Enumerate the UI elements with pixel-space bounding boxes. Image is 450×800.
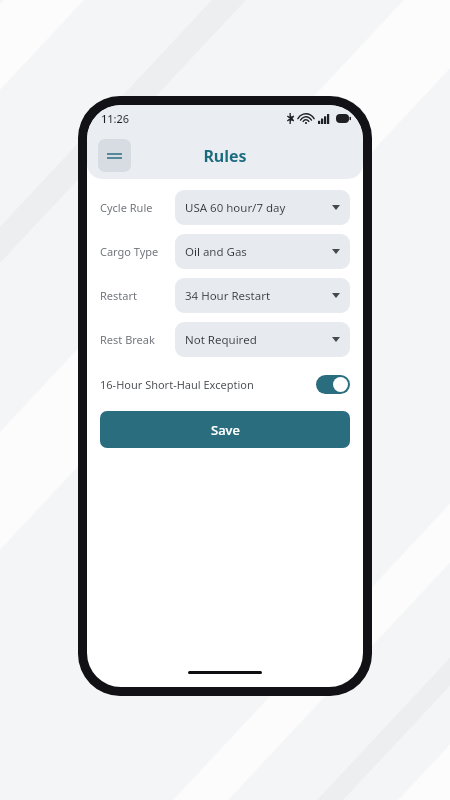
button[interactable]: 16-Hour Short-Haul Exception xyxy=(100,372,350,396)
button[interactable]: Open navigation menu xyxy=(98,139,131,172)
staticText: Oil and Gas xyxy=(185,244,247,260)
staticText: Restart xyxy=(100,288,170,303)
staticText: Not Required xyxy=(185,332,257,348)
button[interactable]: Save xyxy=(100,411,350,448)
button[interactable]: 34 Hour Restart xyxy=(175,278,350,313)
staticText: Cargo Type xyxy=(100,244,170,259)
staticText: 16-Hour Short-Haul Exception xyxy=(100,377,254,392)
staticText: 11:26 xyxy=(101,111,130,126)
staticText: Save xyxy=(211,421,240,439)
staticText: Rules xyxy=(203,145,247,167)
staticText: USA 60 hour/7 day xyxy=(185,200,286,216)
staticText: Cycle Rule xyxy=(100,200,170,215)
button[interactable]: Oil and Gas xyxy=(175,234,350,269)
staticText: Rest Break xyxy=(100,332,170,347)
button[interactable]: Not Required xyxy=(175,322,350,357)
button[interactable]: USA 60 hour/7 day xyxy=(175,190,350,225)
staticText: 34 Hour Restart xyxy=(185,288,271,304)
